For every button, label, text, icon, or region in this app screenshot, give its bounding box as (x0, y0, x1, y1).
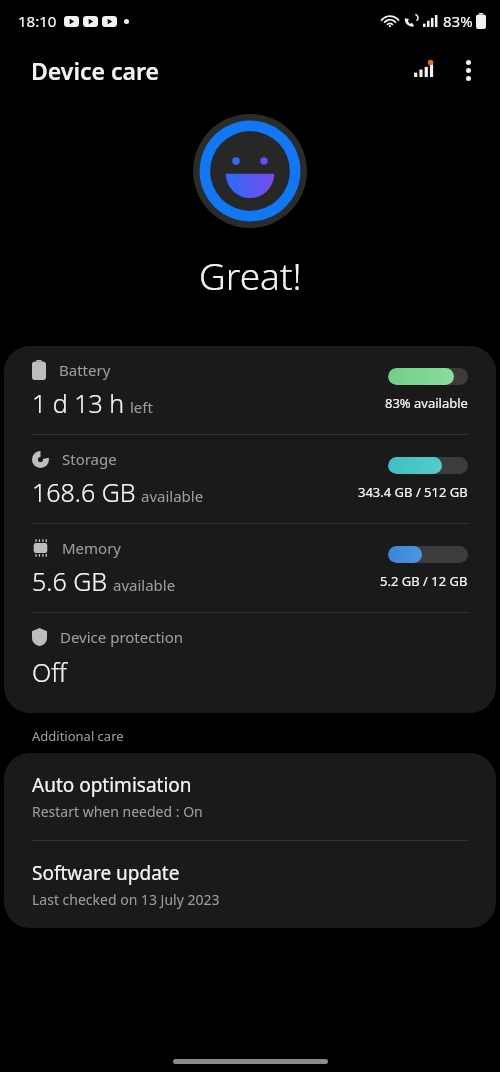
staticText: available (113, 575, 176, 595)
button[interactable]: Device protection (4, 613, 496, 713)
staticText: 83% available (385, 394, 468, 412)
staticText: 168.6 GB (32, 475, 136, 509)
staticText: Auto optimisation (32, 772, 192, 798)
button[interactable]: Storage (4, 435, 496, 523)
staticText: 343.4 GB / 512 GB (358, 483, 468, 501)
staticText: 1 d 13 h (32, 386, 125, 420)
button[interactable]: Software update (4, 841, 496, 928)
staticText: left (130, 397, 153, 417)
staticText: Battery (59, 360, 111, 380)
staticText: 18:10 (18, 11, 57, 31)
staticText: 83% (443, 11, 473, 31)
staticText: Last checked on 13 July 2023 (32, 890, 220, 909)
staticText: Memory (62, 538, 122, 558)
staticText: Great! (199, 250, 302, 300)
button[interactable]: Memory (4, 524, 496, 612)
staticText: Restart when needed : On (32, 802, 203, 821)
button[interactable]: Battery (4, 346, 496, 434)
staticText: Additional care (32, 727, 124, 745)
staticText: Device protection (60, 627, 184, 647)
button[interactable]: More options (446, 48, 490, 92)
button[interactable]: Usage statistics (402, 48, 446, 92)
staticText: Storage (62, 449, 117, 469)
staticText: Off (32, 655, 67, 689)
staticText: Device care (31, 55, 159, 86)
staticText: 5.6 GB (32, 564, 108, 598)
button[interactable]: Auto optimisation (4, 753, 496, 840)
staticText: Software update (32, 860, 180, 886)
staticText: available (141, 486, 204, 506)
staticText: 5.2 GB / 12 GB (380, 572, 468, 590)
